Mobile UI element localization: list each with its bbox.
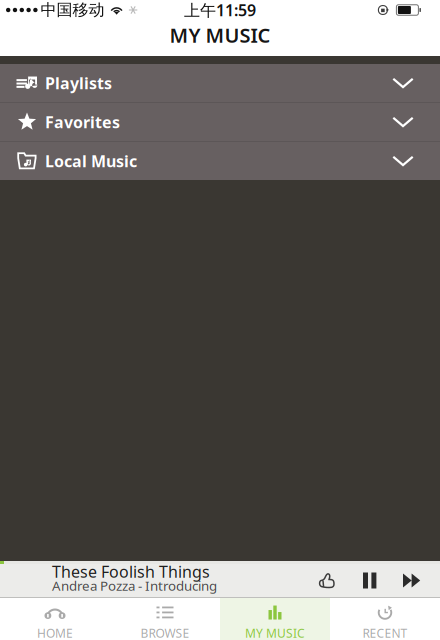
button[interactable]: Local Music (0, 142, 440, 180)
button[interactable]: Next (392, 564, 432, 597)
staticText: HOME (37, 625, 73, 640)
staticText: 上午11:59 (184, 0, 256, 21)
staticText: Favorites (45, 111, 120, 133)
staticText: BROWSE (140, 625, 189, 640)
staticText: Playlists (45, 72, 112, 94)
button[interactable]: Pause (348, 564, 392, 597)
staticText: MY MUSIC (169, 22, 270, 48)
staticText: These Foolish Things (52, 561, 210, 582)
staticText: Local Music (45, 150, 137, 172)
button[interactable]: BROWSE (110, 598, 220, 640)
button[interactable]: RECENT (330, 598, 440, 640)
button[interactable]: HOME (0, 598, 110, 640)
button[interactable]: MY MUSIC (220, 598, 330, 640)
staticText: MY MUSIC (245, 625, 305, 640)
button[interactable]: Playlists (0, 64, 440, 102)
button[interactable]: Favorites (0, 103, 440, 141)
staticText: RECENT (362, 625, 407, 640)
staticText: Andrea Pozza - Introducing (52, 577, 217, 594)
staticText: 中国移动 (41, 0, 105, 20)
button[interactable]: Like (306, 564, 348, 597)
